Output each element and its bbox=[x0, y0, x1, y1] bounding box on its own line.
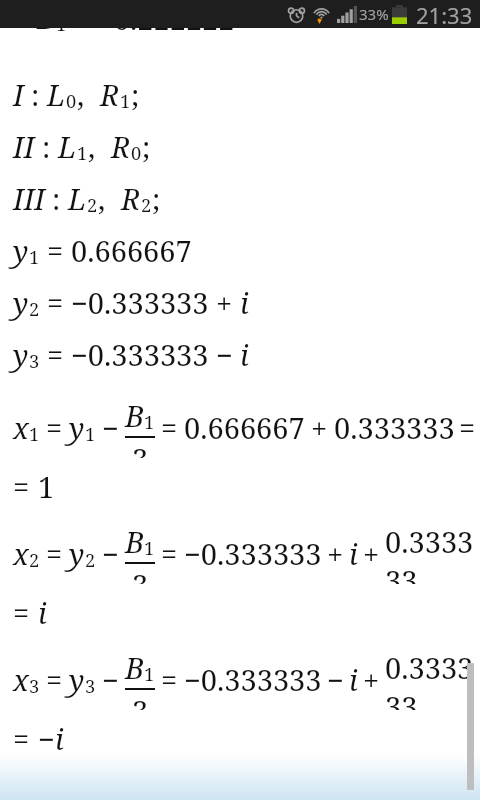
staticText: 2 bbox=[87, 192, 98, 217]
staticText: ; bbox=[152, 179, 161, 218]
staticText: 0.666667 bbox=[184, 408, 305, 447]
staticText: = bbox=[459, 408, 476, 447]
staticText: 0 bbox=[131, 140, 142, 165]
staticText: + bbox=[216, 283, 233, 322]
staticText: = bbox=[46, 660, 63, 699]
staticText: , bbox=[88, 127, 96, 166]
staticText: R bbox=[111, 127, 131, 166]
staticText: 0.333333 bbox=[385, 648, 480, 710]
staticText: −0.333333 bbox=[184, 534, 322, 573]
staticText: = bbox=[47, 231, 64, 270]
staticText: − bbox=[102, 534, 119, 573]
staticText: i bbox=[240, 335, 249, 374]
staticText: 0.666667 bbox=[71, 231, 192, 270]
staticText: 1 bbox=[144, 409, 155, 434]
staticText: x bbox=[13, 660, 29, 699]
staticText: = bbox=[46, 534, 63, 573]
staticText: = bbox=[161, 660, 178, 699]
staticText: 2 bbox=[29, 296, 40, 321]
staticText: 1 bbox=[144, 535, 155, 560]
other: Alarm set bbox=[287, 5, 306, 24]
staticText: L bbox=[58, 127, 77, 166]
staticText: − bbox=[102, 660, 119, 699]
staticText: 1 bbox=[38, 467, 55, 506]
staticText: L bbox=[68, 179, 87, 218]
staticText: = bbox=[13, 467, 30, 506]
staticText: , bbox=[98, 179, 106, 218]
staticText: L bbox=[47, 75, 66, 114]
staticText: 3 bbox=[132, 439, 149, 458]
staticText: − bbox=[102, 408, 119, 447]
staticText: ; bbox=[142, 127, 151, 166]
staticText: −0.333333 bbox=[71, 335, 209, 374]
staticText: + bbox=[363, 534, 380, 573]
staticText: −0.222222 bbox=[97, 28, 235, 38]
staticText: i bbox=[55, 719, 64, 758]
staticText: III bbox=[13, 179, 45, 218]
staticText: 3 bbox=[29, 673, 40, 698]
staticText: 1 bbox=[144, 661, 155, 686]
staticText: − bbox=[327, 660, 344, 699]
staticText: − bbox=[216, 335, 233, 374]
staticText: 0 bbox=[66, 88, 77, 113]
staticText: : bbox=[52, 179, 61, 218]
staticText: x bbox=[13, 408, 29, 447]
staticText: 3 bbox=[29, 348, 40, 373]
staticText: 1 bbox=[77, 140, 88, 165]
staticText: −0.333333 bbox=[184, 660, 322, 699]
staticText: = bbox=[161, 408, 178, 447]
other: Wi-Fi bbox=[312, 5, 331, 24]
staticText: 1 bbox=[29, 421, 40, 446]
staticText: y bbox=[69, 660, 85, 699]
staticText: x bbox=[13, 534, 29, 573]
staticText: ; bbox=[131, 75, 140, 114]
staticText: 33% bbox=[359, 4, 389, 24]
staticText: y bbox=[13, 283, 29, 322]
staticText: 3 bbox=[132, 565, 149, 584]
staticText: y bbox=[13, 335, 29, 374]
staticText: R bbox=[121, 179, 141, 218]
staticText: 1 bbox=[120, 88, 131, 113]
staticText: y bbox=[69, 408, 85, 447]
staticText: B bbox=[125, 396, 144, 435]
staticText: 3 bbox=[85, 673, 96, 698]
other: Signal bbox=[337, 6, 357, 23]
staticText: R bbox=[100, 75, 120, 114]
staticText: : bbox=[31, 75, 40, 114]
staticText: y bbox=[13, 231, 29, 270]
staticText: i bbox=[349, 660, 358, 699]
staticText: y bbox=[69, 534, 85, 573]
staticText: = bbox=[13, 719, 30, 758]
staticText: 1 bbox=[85, 421, 96, 446]
staticText: II bbox=[13, 127, 35, 166]
staticText: − bbox=[38, 719, 55, 758]
staticText: i bbox=[349, 534, 358, 573]
staticText: B bbox=[125, 648, 144, 687]
staticText: = bbox=[47, 283, 64, 322]
staticText: : bbox=[42, 127, 51, 166]
other: Battery 33 percent bbox=[392, 5, 407, 24]
staticText: 0.333333 bbox=[334, 408, 455, 447]
staticText: i bbox=[38, 593, 47, 632]
staticText: I bbox=[13, 75, 24, 114]
staticText: = bbox=[161, 534, 178, 573]
staticText: 0.333333 bbox=[385, 522, 480, 584]
staticText: B bbox=[125, 522, 144, 561]
staticText: 2 bbox=[141, 192, 152, 217]
staticText: 2 bbox=[85, 547, 96, 572]
staticText: , bbox=[77, 75, 85, 114]
staticText: = bbox=[47, 335, 64, 374]
staticText: 1 bbox=[56, 28, 67, 36]
staticText: i bbox=[240, 283, 249, 322]
staticText: = bbox=[13, 593, 30, 632]
button[interactable]: − bbox=[0, 28, 480, 800]
staticText: 3 bbox=[132, 691, 149, 710]
staticText: 2 bbox=[29, 547, 40, 572]
staticText: −0.333333 bbox=[71, 283, 209, 322]
staticText: 21:33 bbox=[416, 0, 473, 28]
staticText: = bbox=[46, 408, 63, 447]
staticText: 1 bbox=[29, 244, 40, 269]
staticText: + bbox=[311, 408, 328, 447]
